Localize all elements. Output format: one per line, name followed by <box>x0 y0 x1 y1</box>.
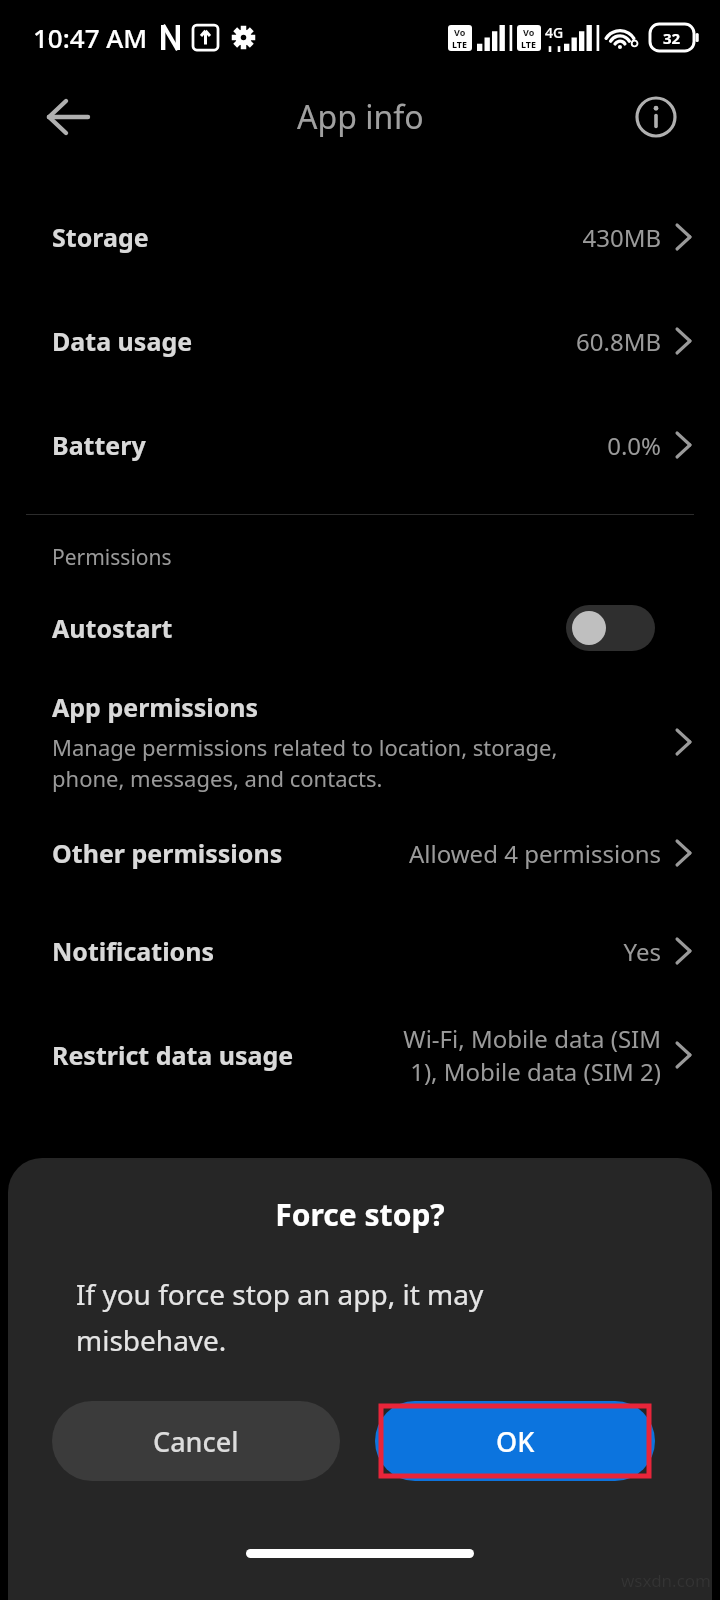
button[interactable]: Restrict data usage <box>0 1010 720 1100</box>
staticText: App info <box>297 95 424 139</box>
staticText: Manage permissions related to location, … <box>52 732 558 794</box>
staticText: Yes <box>231 935 661 968</box>
button[interactable]: Notifications <box>0 918 720 984</box>
staticText: 60.8MB <box>209 325 661 358</box>
button[interactable]: Cancel <box>52 1401 340 1481</box>
staticText: Wi-Fi, Mobile data (SIM 1), Mobile data … <box>310 1022 661 1088</box>
button[interactable]: Battery <box>0 412 720 478</box>
staticText: Cancel <box>153 1423 239 1460</box>
button[interactable]: Data usage <box>0 308 720 374</box>
staticText: 4G <box>545 23 564 42</box>
staticText: wsxdn.com <box>621 1569 712 1592</box>
staticText: If you force stop an app, it may misbeha… <box>76 1275 484 1359</box>
staticText: Data usage <box>52 324 193 358</box>
button[interactable]: App permissions <box>0 686 720 798</box>
button[interactable]: Other permissions <box>0 820 720 886</box>
staticText: 10:47 AM <box>33 20 148 55</box>
button[interactable]: Autostart <box>0 592 720 664</box>
staticText: Autostart <box>52 611 173 645</box>
staticText: Notifications <box>52 934 215 968</box>
staticText: LTE <box>452 38 468 50</box>
staticText: LTE <box>521 38 537 50</box>
staticText: Storage <box>52 220 149 254</box>
staticText: 0.0% <box>162 429 661 462</box>
staticText: 430MB <box>165 221 661 254</box>
button[interactable]: Storage <box>0 204 720 270</box>
staticText: OK <box>496 1423 535 1460</box>
staticText: Vo <box>523 26 535 38</box>
button[interactable]: Back <box>30 79 106 155</box>
staticText: Vo <box>454 26 466 38</box>
staticText: Allowed 4 permissions <box>299 837 661 870</box>
staticText: App permissions <box>52 690 259 724</box>
button[interactable]: OK <box>375 1401 655 1481</box>
staticText: 32 <box>663 28 681 48</box>
staticText: Restrict data usage <box>52 1038 294 1072</box>
staticText: Battery <box>52 428 146 462</box>
button[interactable]: More info <box>620 81 692 153</box>
staticText: Other permissions <box>52 836 283 870</box>
staticText: Permissions <box>52 543 172 572</box>
staticText: Force stop? <box>8 1194 712 1235</box>
